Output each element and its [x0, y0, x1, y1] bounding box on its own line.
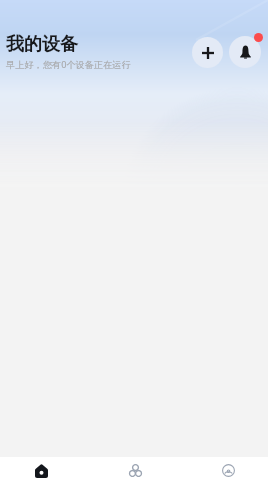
button[interactable]: Home [12, 457, 72, 480]
button[interactable]: Add device [192, 37, 223, 68]
button[interactable]: 我的设备 [6, 33, 78, 56]
staticText: 早上好，您有0个设备正在运行 [6, 58, 131, 71]
button[interactable]: Notifications [229, 36, 261, 68]
button[interactable]: Profile [198, 457, 258, 480]
button[interactable]: Scenes [105, 457, 165, 480]
